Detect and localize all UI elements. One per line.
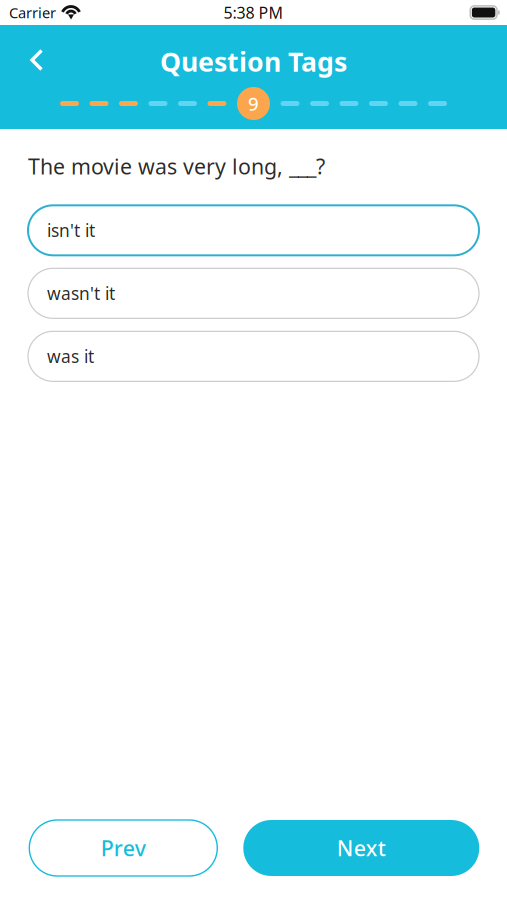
staticText: was it xyxy=(47,345,94,368)
staticText: 5:38 PM xyxy=(223,2,283,23)
button[interactable]: Prev xyxy=(29,820,217,876)
button[interactable]: isn't it xyxy=(28,205,479,255)
button[interactable]: was it xyxy=(28,331,479,381)
staticText: wasn't it xyxy=(47,282,115,305)
staticText: 9 xyxy=(248,91,259,116)
staticText: Question Tags xyxy=(160,44,347,79)
button[interactable]: Next xyxy=(243,820,479,876)
staticText: isn't it xyxy=(47,219,95,242)
staticText: Prev xyxy=(101,834,146,862)
button[interactable]: Back xyxy=(15,40,59,80)
staticText: Next xyxy=(337,834,386,862)
staticText: Carrier xyxy=(9,3,56,22)
button[interactable]: wasn't it xyxy=(28,268,479,318)
staticText: The movie was very long, ___? xyxy=(28,152,325,180)
